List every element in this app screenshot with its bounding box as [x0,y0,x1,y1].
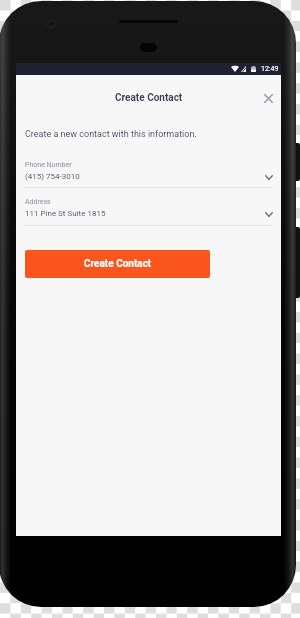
staticText: Create Contact [115,92,183,104]
staticText: 12:49 [261,65,279,73]
staticText: (415) 754-3010 [25,172,80,181]
staticText: Address [25,198,51,206]
button[interactable]: Close [256,86,280,110]
button[interactable]: Expand Phone Number [258,168,280,186]
staticText: Phone Number [25,161,72,169]
staticText: Create Contact [84,258,152,270]
staticText: 111 Pine St Suite 1815 [25,209,106,218]
button[interactable]: Create Contact [25,250,210,278]
staticText: Create a new contact with this informati… [25,129,197,140]
button[interactable]: Expand Address [258,205,280,223]
